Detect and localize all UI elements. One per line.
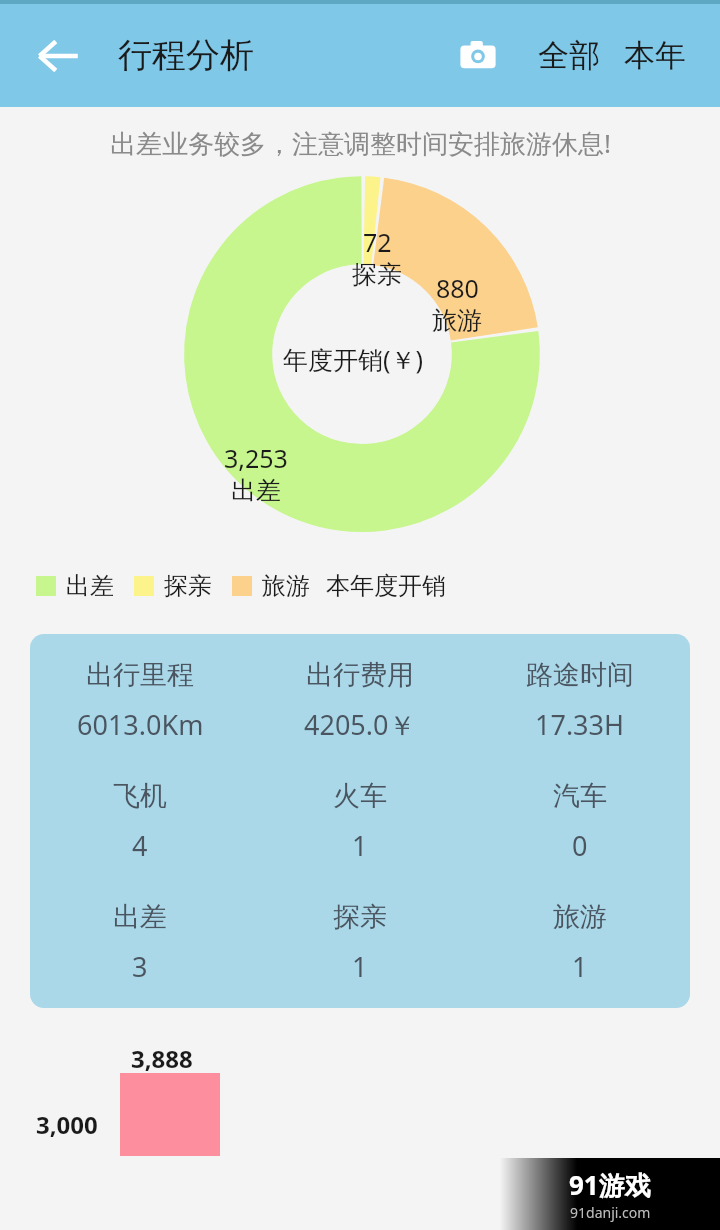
staticText: 3,253 — [224, 441, 288, 475]
button[interactable]: Back — [24, 22, 92, 90]
staticText: 本年 — [624, 36, 686, 75]
staticText: 旅游 — [553, 900, 607, 934]
staticText: 年度开销(￥) — [283, 342, 424, 376]
staticText: 91游戏 — [569, 1167, 651, 1203]
button[interactable]: 探亲 — [134, 571, 212, 601]
staticText: 探亲 — [352, 259, 402, 290]
staticText: 旅游 — [262, 571, 310, 601]
staticText: 出行费用 — [306, 658, 414, 692]
staticText: 1 — [352, 948, 368, 985]
staticText: 6013.0Km — [77, 706, 204, 743]
button[interactable]: 全部 — [538, 36, 600, 75]
staticText: 3 — [132, 948, 148, 985]
staticText: 汽车 — [553, 779, 607, 813]
button[interactable]: 出差 — [36, 571, 114, 601]
staticText: 出行里程 — [86, 658, 194, 692]
staticText: 0 — [572, 827, 588, 864]
staticText: 出差 — [231, 475, 281, 506]
staticText: 出差 — [66, 571, 114, 601]
staticText: 1 — [352, 827, 368, 864]
staticText: 3,000 — [36, 1108, 98, 1141]
button[interactable]: Camera — [448, 26, 508, 86]
staticText: 91danji.com — [570, 1203, 651, 1222]
staticText: 行程分析 — [118, 34, 254, 77]
button[interactable]: 出行里程 — [30, 634, 690, 1008]
staticText: 17.33H — [535, 706, 625, 743]
staticText: 4205.0￥ — [304, 706, 416, 743]
button[interactable]: 本年 — [624, 36, 686, 75]
staticText: 4 — [132, 827, 148, 864]
staticText: 出差 — [113, 900, 167, 934]
staticText: 1 — [572, 948, 588, 985]
staticText: 3,888 — [131, 1042, 193, 1075]
staticText: 880 — [436, 271, 479, 305]
button[interactable]: 旅游 — [232, 571, 310, 601]
staticText: 本年度开销 — [326, 571, 446, 601]
staticText: 72 — [363, 225, 392, 259]
staticText: 探亲 — [333, 900, 387, 934]
staticText: 火车 — [333, 779, 387, 813]
staticText: 飞机 — [113, 779, 167, 813]
staticText: 旅游 — [432, 305, 482, 336]
staticText: 出差业务较多，注意调整时间安排旅游休息! — [110, 125, 611, 161]
staticText: 全部 — [538, 36, 600, 75]
staticText: 路途时间 — [526, 658, 634, 692]
staticText: 探亲 — [164, 571, 212, 601]
